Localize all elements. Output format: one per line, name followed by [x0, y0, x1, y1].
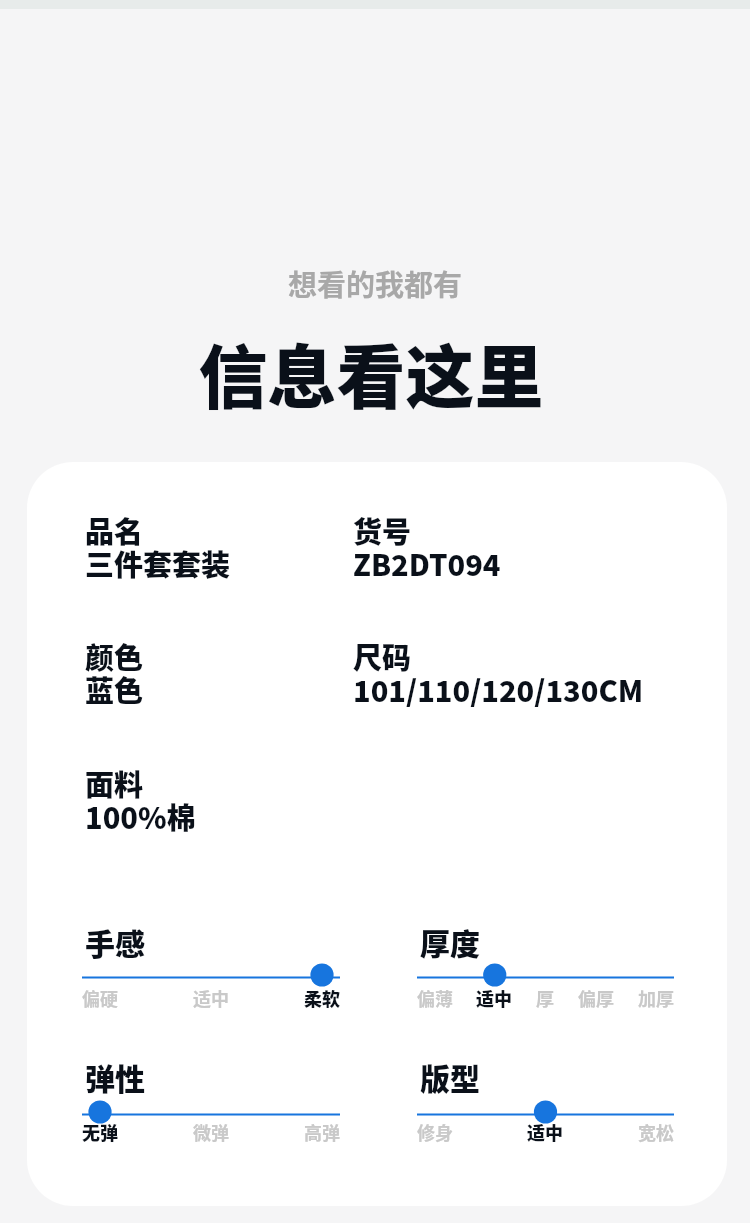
staticText: ZB2DT094 — [353, 542, 501, 584]
staticText: 适中 — [193, 985, 229, 1009]
staticText: 信息看这里 — [0, 323, 746, 423]
staticText: 厚 — [536, 985, 554, 1009]
staticText: 修身 — [417, 1119, 453, 1143]
staticText: 偏硬 — [82, 985, 118, 1009]
staticText: 想看的我都有 — [0, 262, 750, 304]
button[interactable]: 微弹 — [193, 1119, 229, 1143]
staticText: 手感 — [85, 920, 145, 963]
staticText: 100%棉 — [85, 795, 196, 837]
button[interactable]: 适中 — [527, 1119, 563, 1143]
button[interactable]: 偏薄 — [417, 985, 453, 1009]
staticText: 版型 — [420, 1055, 480, 1098]
button[interactable]: 偏厚 — [578, 985, 614, 1009]
staticText: 微弹 — [193, 1119, 229, 1143]
button[interactable]: 颜色 — [85, 635, 345, 701]
button[interactable]: 宽松 — [638, 1119, 674, 1143]
button[interactable]: 加厚 — [638, 985, 674, 1009]
staticText: 三件套套装 — [85, 542, 231, 584]
staticText: 偏厚 — [578, 985, 614, 1009]
button[interactable]: 偏硬 — [82, 985, 118, 1009]
staticText: 高弹 — [304, 1119, 340, 1143]
button[interactable]: 厚度评分 — [417, 960, 674, 990]
button[interactable]: 无弹 — [82, 1119, 118, 1143]
button[interactable]: 高弹 — [304, 1119, 340, 1143]
staticText: 尺码 — [353, 635, 412, 677]
button[interactable]: 手感评分 — [82, 960, 340, 990]
staticText: 偏薄 — [417, 985, 453, 1009]
button[interactable]: 版型评分 — [417, 1097, 674, 1127]
button[interactable]: 适中 — [476, 985, 512, 1009]
staticText: 加厚 — [638, 985, 674, 1009]
staticText: 厚度 — [420, 920, 480, 963]
button[interactable]: 货号 — [353, 509, 653, 575]
button[interactable]: 弹性评分 — [82, 1097, 340, 1127]
button[interactable]: 修身 — [417, 1119, 453, 1143]
staticText: 适中 — [527, 1119, 563, 1143]
button[interactable]: 厚 — [536, 985, 554, 1009]
staticText: 101/110/120/130CM — [353, 668, 644, 710]
staticText: 货号 — [353, 509, 412, 551]
staticText: 无弹 — [82, 1119, 118, 1143]
button[interactable]: 柔软 — [304, 985, 340, 1009]
staticText: 适中 — [476, 985, 512, 1009]
button[interactable]: 品名 — [85, 509, 345, 575]
button[interactable]: 适中 — [193, 985, 229, 1009]
staticText: 品名 — [85, 509, 144, 551]
staticText: 弹性 — [85, 1055, 145, 1098]
staticText: 面料 — [85, 762, 144, 804]
button[interactable]: 面料 — [85, 762, 345, 828]
staticText: 宽松 — [638, 1119, 674, 1143]
button[interactable]: 尺码 — [353, 635, 653, 701]
staticText: 颜色 — [85, 635, 144, 677]
staticText: 蓝色 — [85, 668, 144, 710]
staticText: 柔软 — [304, 985, 340, 1009]
